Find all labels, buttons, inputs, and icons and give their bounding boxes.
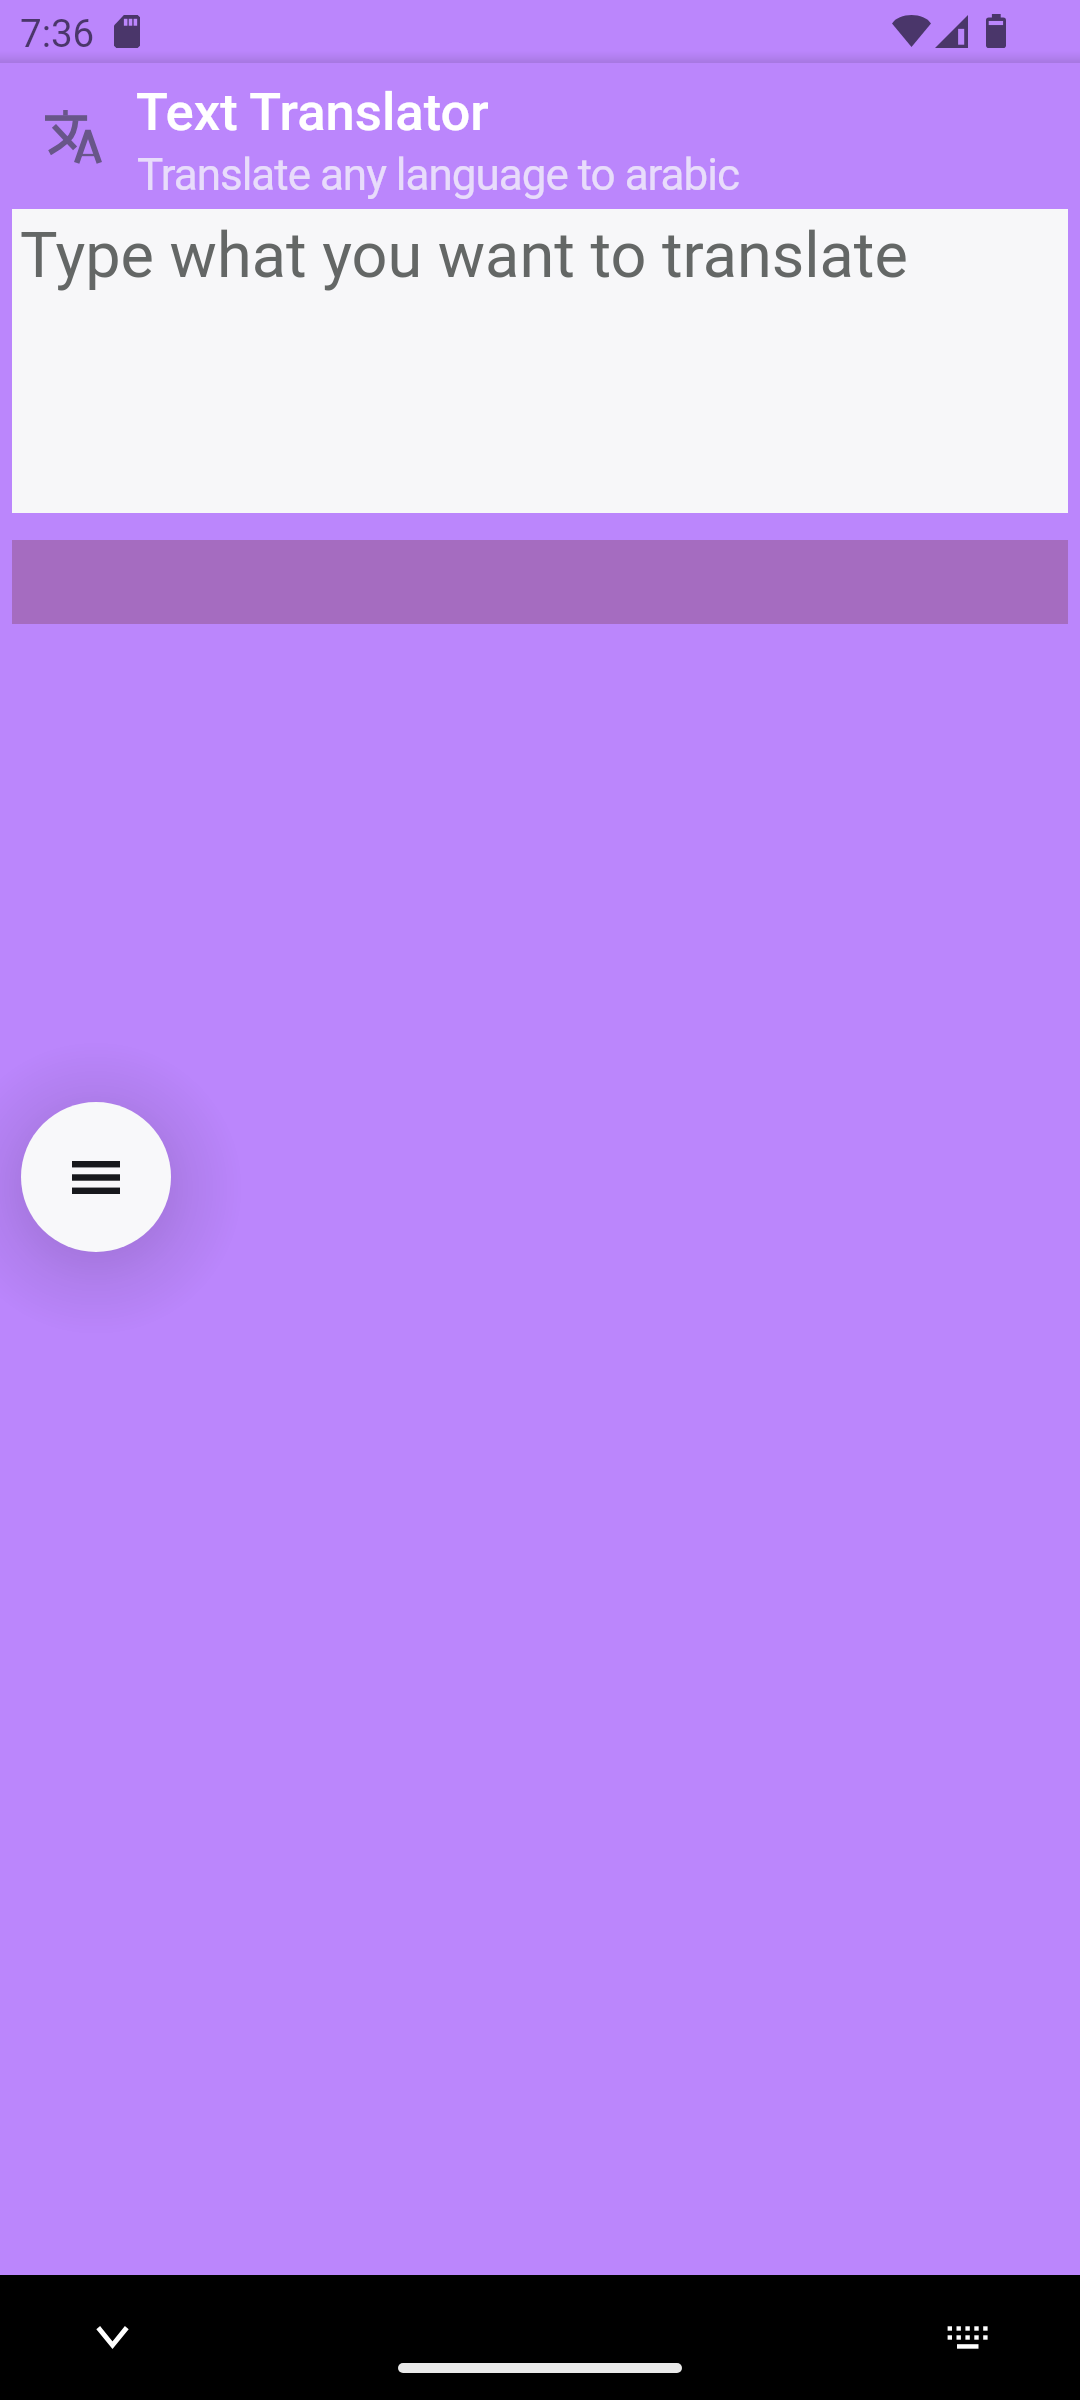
button[interactable]: Type what you want to translate — [12, 209, 1068, 513]
staticText: 7:36 — [20, 11, 95, 56]
button[interactable]: Switch keyboard — [936, 2314, 999, 2364]
button[interactable]: Menu — [21, 1102, 171, 1252]
button[interactable]: Hide keyboard — [88, 2318, 137, 2367]
staticText: Text Translator — [136, 81, 489, 143]
staticText: Translate any language to arabic — [137, 149, 739, 201]
staticText: Type what you want to translate — [20, 219, 908, 293]
